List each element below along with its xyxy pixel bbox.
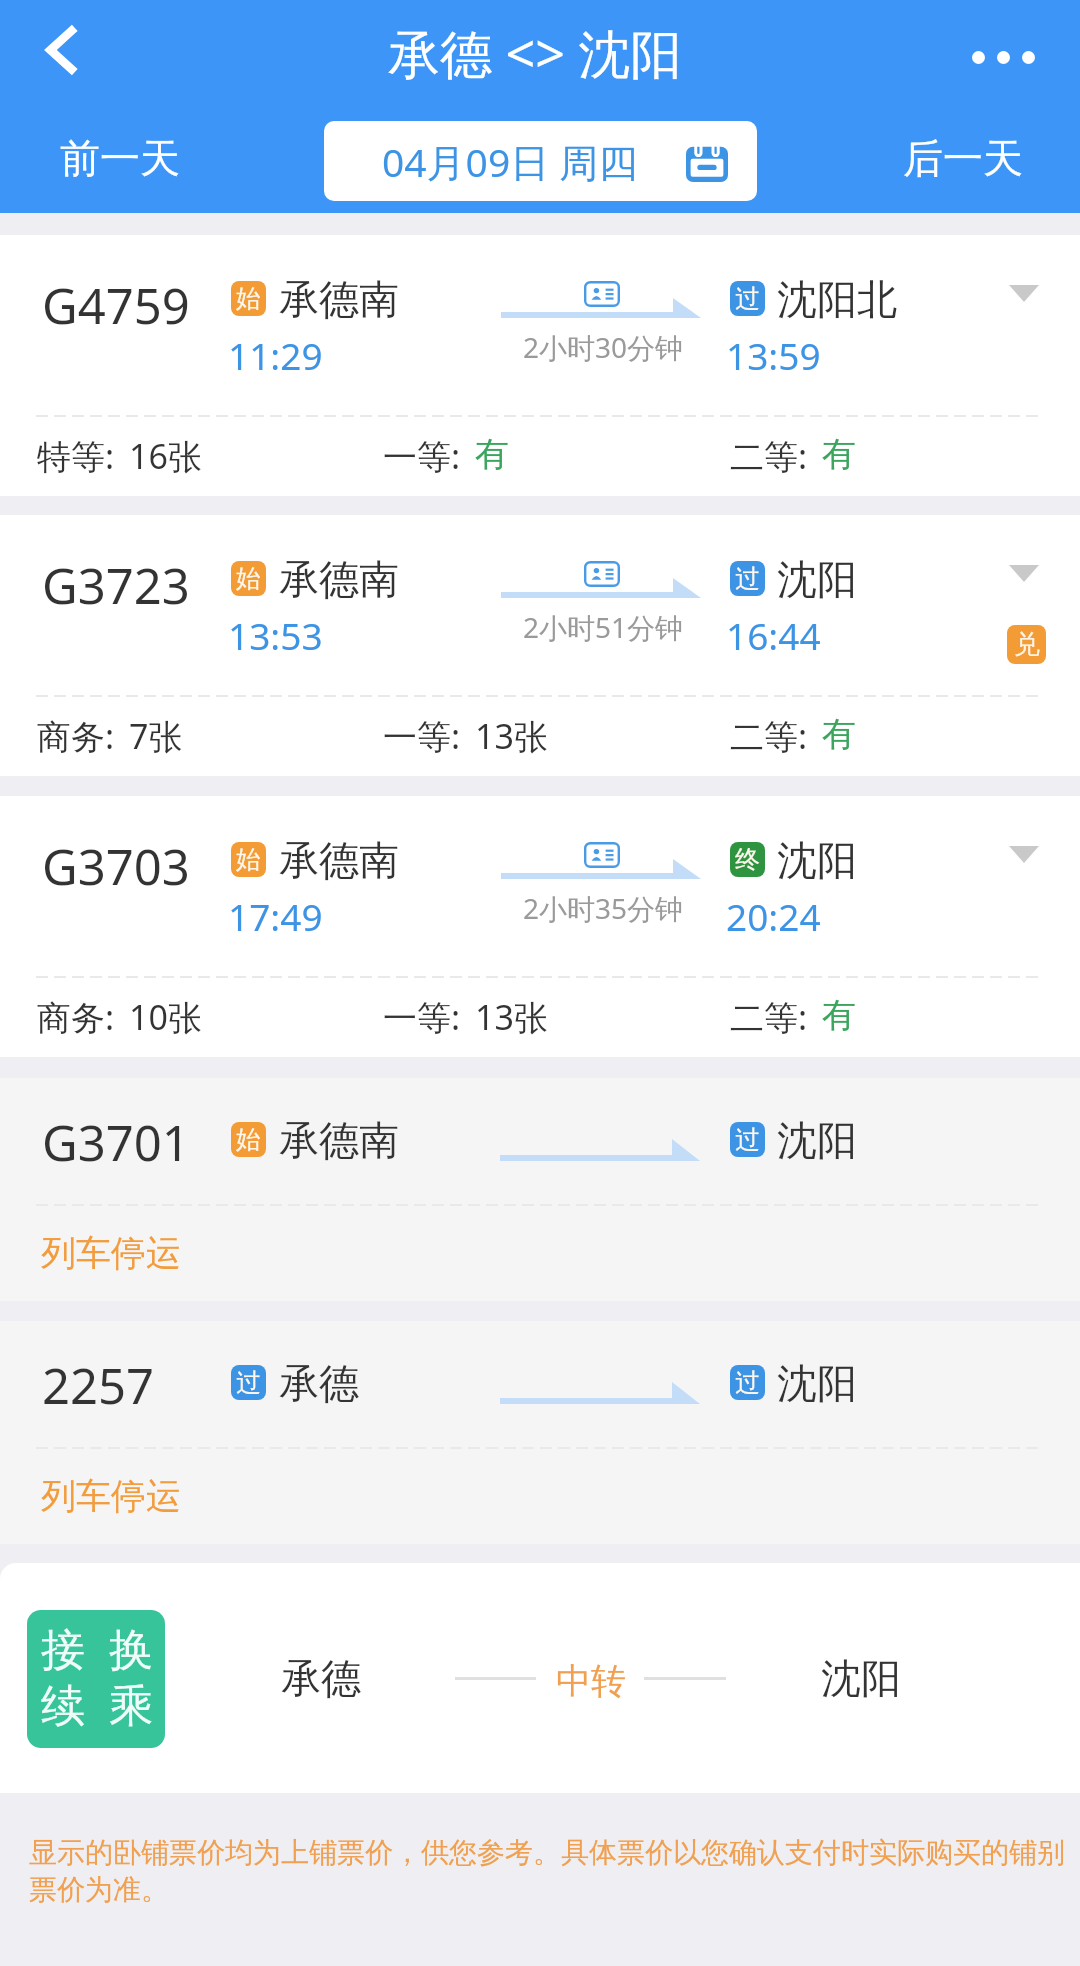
staticText: 沈阳: [777, 554, 857, 604]
staticText: 二等:: [730, 713, 822, 759]
staticText: 二等:: [730, 433, 822, 479]
staticText: 过: [236, 1367, 261, 1398]
staticText: 列车停运: [41, 1474, 181, 1518]
staticText: 一等:: [383, 713, 475, 759]
staticText: 20:24: [726, 891, 821, 941]
button[interactable]: 兑换: [1007, 625, 1046, 664]
button[interactable]: G3701: [0, 1078, 1080, 1301]
staticText: 中转: [556, 1659, 626, 1703]
staticText: 过: [735, 1124, 760, 1155]
staticText: 乘: [109, 1679, 153, 1734]
staticText: 2小时51分钟: [523, 608, 684, 646]
staticText: 沈阳: [777, 1115, 857, 1165]
staticText: 商务:: [37, 713, 129, 759]
staticText: 承德: [281, 1653, 361, 1703]
staticText: 13:53: [228, 610, 323, 660]
staticText: 沈阳: [821, 1653, 901, 1703]
staticText: 有: [822, 713, 856, 756]
staticText: 一等:: [383, 433, 475, 479]
staticText: 有: [822, 994, 856, 1037]
staticText: 换: [109, 1623, 153, 1678]
button[interactable]: Back: [21, 10, 101, 90]
staticText: G3701: [42, 1109, 190, 1176]
staticText: 始: [236, 563, 261, 594]
staticText: 一等:: [383, 994, 475, 1040]
staticText: 承德南: [279, 274, 399, 324]
button[interactable]: Expand train details: [985, 822, 1063, 886]
staticText: 17:49: [228, 891, 323, 941]
button[interactable]: 前一天: [0, 113, 240, 203]
staticText: 前一天: [60, 133, 180, 183]
staticText: 承德 <> 沈阳: [388, 17, 683, 88]
staticText: 二等:: [730, 994, 822, 1040]
button[interactable]: 接续换乘: [27, 1610, 165, 1748]
staticText: 04月09日 周四: [382, 135, 638, 188]
button[interactable]: 2257: [0, 1321, 1080, 1544]
staticText: 始: [236, 1124, 261, 1155]
button[interactable]: More options: [958, 12, 1048, 102]
staticText: 有: [822, 433, 856, 476]
staticText: 承德: [279, 1358, 359, 1408]
staticText: 16张: [129, 433, 202, 479]
staticText: 13:59: [726, 330, 821, 380]
button[interactable]: G3723: [0, 515, 1080, 776]
staticText: 2小时30分钟: [523, 328, 684, 366]
button[interactable]: G3703: [0, 796, 1080, 1057]
staticText: 承德南: [279, 1115, 399, 1165]
staticText: 16:44: [726, 610, 821, 660]
staticText: G3703: [42, 833, 190, 900]
staticText: 过: [735, 1367, 760, 1398]
staticText: 过: [735, 563, 760, 594]
staticText: 始: [236, 844, 261, 875]
staticText: 接: [41, 1623, 85, 1678]
staticText: 终: [735, 844, 760, 875]
button[interactable]: 04月09日 周四: [324, 121, 757, 201]
staticText: 商务:: [37, 994, 129, 1040]
staticText: 13张: [475, 713, 548, 759]
staticText: 11:29: [228, 330, 323, 380]
staticText: 后一天: [903, 133, 1023, 183]
staticText: 承德南: [279, 835, 399, 885]
staticText: 沈阳北: [777, 274, 897, 324]
staticText: 列车停运: [41, 1231, 181, 1275]
staticText: 沈阳: [777, 1358, 857, 1408]
button[interactable]: Expand train details: [985, 541, 1063, 605]
button[interactable]: 后一天: [845, 113, 1080, 203]
staticText: 7张: [129, 713, 183, 759]
button[interactable]: G4759: [0, 235, 1080, 496]
staticText: 兑: [1014, 628, 1040, 661]
staticText: 特等:: [37, 433, 129, 479]
staticText: 续: [41, 1679, 85, 1734]
staticText: G3723: [42, 552, 190, 619]
staticText: G4759: [42, 272, 190, 339]
staticText: 沈阳: [777, 835, 857, 885]
staticText: 显示的卧铺票价均为上铺票价，供您参考。具体票价以您确认支付时实际购买的铺别票价为…: [29, 1835, 1072, 1907]
staticText: 承德南: [279, 554, 399, 604]
button[interactable]: Expand train details: [985, 261, 1063, 325]
staticText: 始: [236, 283, 261, 314]
button[interactable]: 接续换乘: [0, 1563, 1080, 1793]
staticText: 10张: [129, 994, 202, 1040]
staticText: 有: [475, 433, 509, 476]
staticText: 13张: [475, 994, 548, 1040]
staticText: 2257: [42, 1352, 155, 1419]
staticText: 2小时35分钟: [523, 889, 684, 927]
staticText: 过: [735, 283, 760, 314]
